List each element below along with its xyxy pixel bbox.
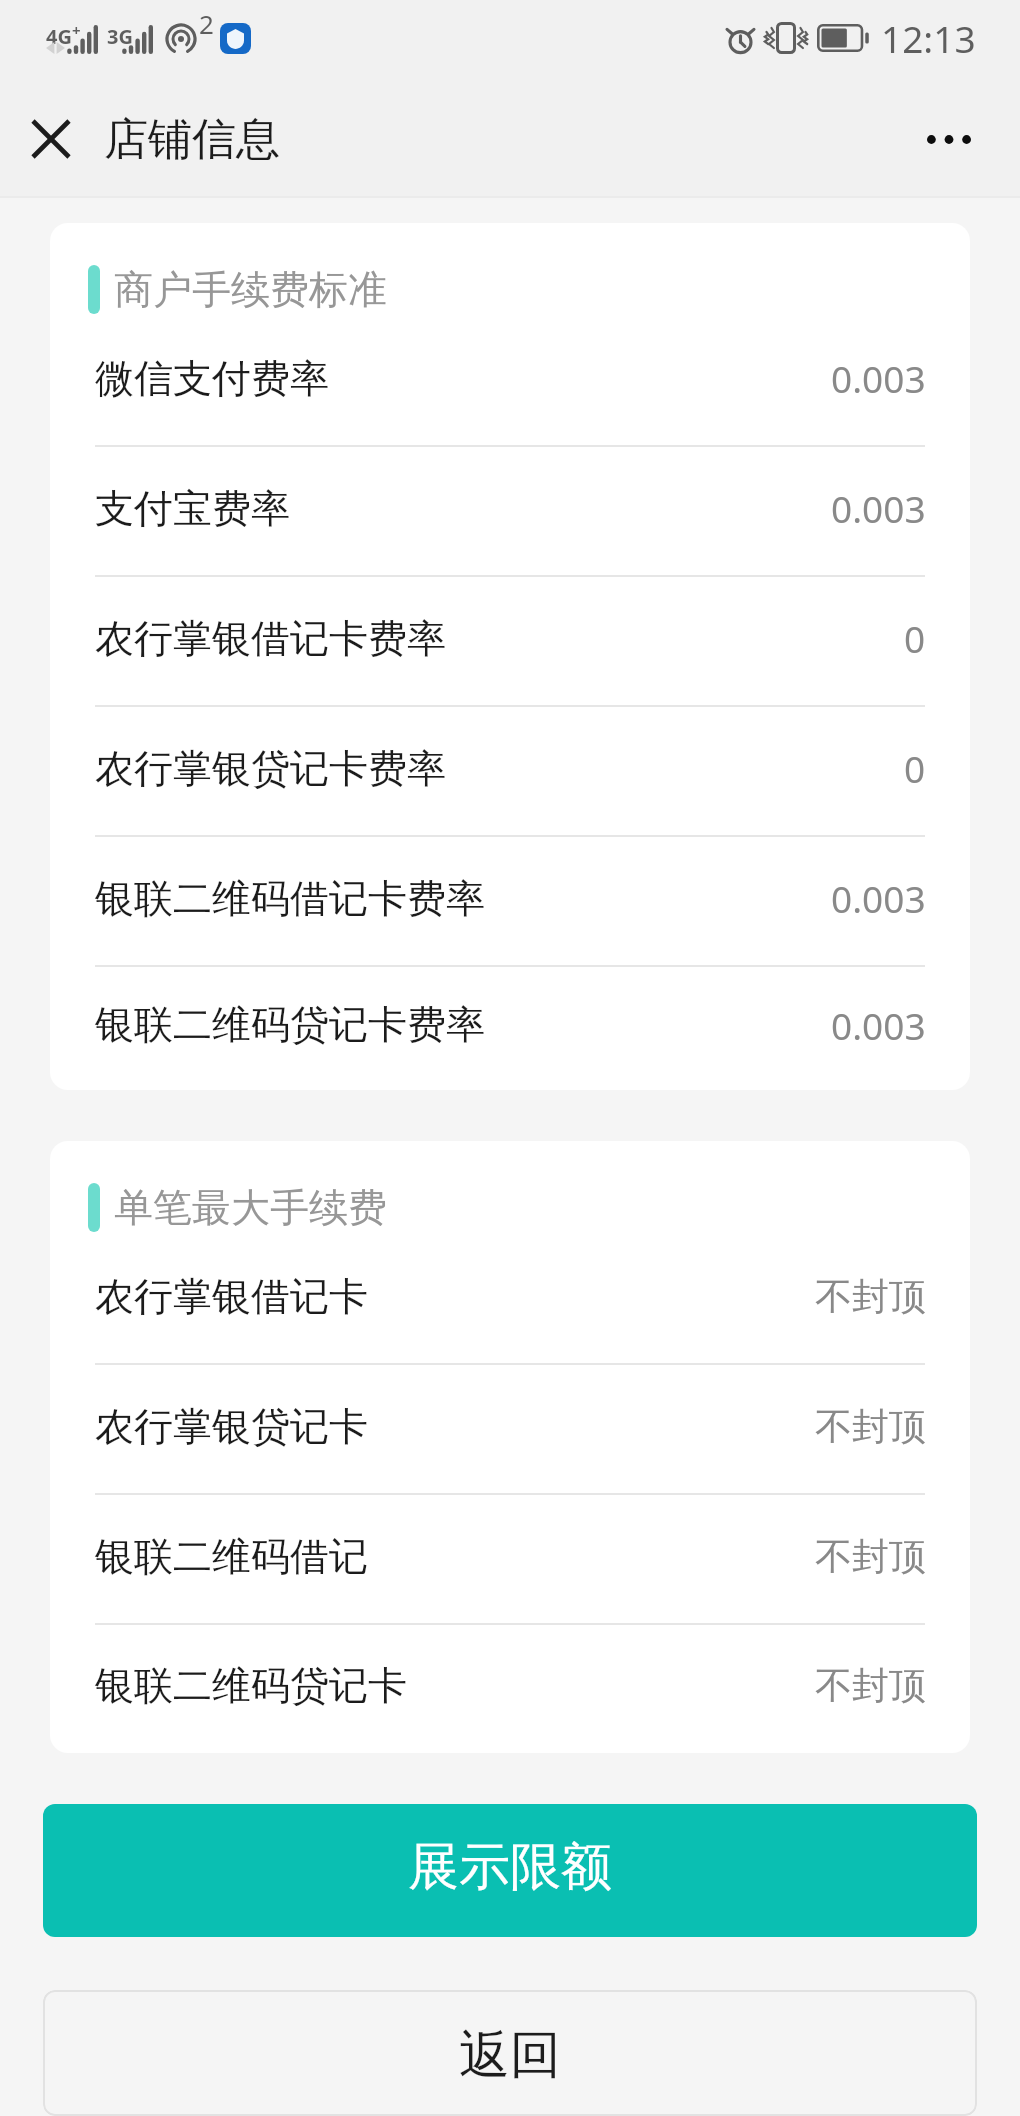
button[interactable]: 农行掌银借记卡费率 xyxy=(50,577,970,707)
staticText: 2 xyxy=(199,6,214,41)
button[interactable]: 银联二维码贷记卡 xyxy=(50,1625,970,1753)
staticText: 返回 xyxy=(459,2023,561,2087)
staticText: 单笔最大手续费 xyxy=(114,1183,387,1232)
staticText: 不封顶 xyxy=(815,1533,926,1580)
button[interactable]: 银联二维码贷记卡费率 xyxy=(50,967,970,1090)
staticText: 银联二维码借记卡费率 xyxy=(95,874,485,923)
staticText: 展示限额 xyxy=(408,1835,612,1899)
staticText: 农行掌银借记卡 xyxy=(95,1272,368,1321)
staticText: 微信支付费率 xyxy=(95,354,329,403)
staticText: 0.003 xyxy=(831,353,926,403)
staticText: 店铺信息 xyxy=(104,112,280,167)
staticText: 0 xyxy=(904,613,926,663)
staticText: 银联二维码贷记卡 xyxy=(95,1661,407,1710)
staticText: 商户手续费标准 xyxy=(114,265,387,314)
staticText: 0.003 xyxy=(831,1000,926,1050)
staticText: 0 xyxy=(904,743,926,793)
staticText: 0.003 xyxy=(831,483,926,533)
staticText: 农行掌银借记卡费率 xyxy=(95,614,446,663)
staticText: 12:13 xyxy=(881,13,976,63)
staticText: 4G xyxy=(46,23,72,50)
button[interactable]: More options xyxy=(911,101,987,177)
button[interactable]: 银联二维码借记卡费率 xyxy=(50,837,970,967)
button[interactable]: 银联二维码借记 xyxy=(50,1495,970,1625)
button[interactable]: 微信支付费率 xyxy=(50,317,970,447)
staticText: 支付宝费率 xyxy=(95,484,290,533)
button[interactable]: 展示限额 xyxy=(43,1804,977,1937)
button[interactable]: 农行掌银贷记卡费率 xyxy=(50,707,970,837)
staticText: 3G xyxy=(107,23,133,50)
staticText: 0.003 xyxy=(831,873,926,923)
button[interactable]: 农行掌银贷记卡 xyxy=(50,1365,970,1495)
staticText: 不封顶 xyxy=(815,1662,926,1709)
button[interactable]: 支付宝费率 xyxy=(50,447,970,577)
staticText: 银联二维码借记 xyxy=(95,1532,368,1581)
button[interactable]: Close xyxy=(15,103,87,175)
staticText: + xyxy=(72,20,81,40)
button[interactable]: 农行掌银借记卡 xyxy=(50,1235,970,1365)
staticText: 不封顶 xyxy=(815,1403,926,1450)
staticText: 银联二维码贷记卡费率 xyxy=(95,1000,485,1049)
button[interactable]: 返回 xyxy=(43,1990,977,2116)
staticText: 农行掌银贷记卡费率 xyxy=(95,744,446,793)
staticText: 农行掌银贷记卡 xyxy=(95,1402,368,1451)
staticText: 不封顶 xyxy=(815,1273,926,1320)
